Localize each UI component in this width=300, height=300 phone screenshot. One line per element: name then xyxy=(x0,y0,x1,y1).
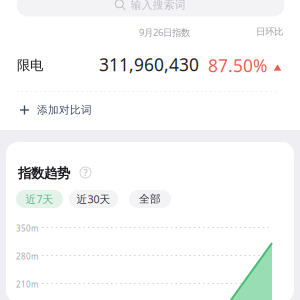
staticText: 日环比 xyxy=(256,26,283,37)
staticText: 输入搜索词 xyxy=(131,0,186,11)
button[interactable]: 添加对比词 xyxy=(20,97,150,123)
button[interactable]: 全部 xyxy=(129,190,171,208)
staticText: 311,960,430 xyxy=(99,53,199,76)
staticText: 近30天 xyxy=(76,192,110,206)
button[interactable]: 近7天 xyxy=(16,190,63,208)
staticText: 280m xyxy=(16,251,38,262)
staticText: 近7天 xyxy=(25,192,53,206)
staticText: 添加对比词 xyxy=(37,103,92,116)
staticText: 210m xyxy=(16,279,38,290)
staticText: 限电 xyxy=(17,57,43,73)
staticText: ? xyxy=(83,166,87,179)
staticText: 87.50% xyxy=(208,54,267,77)
staticText: 指数趋势 xyxy=(18,165,70,181)
button[interactable]: 输入搜索词 xyxy=(16,0,284,16)
staticText: 全部 xyxy=(139,192,161,205)
staticText: 9月26日指数 xyxy=(139,26,190,38)
staticText: 350m xyxy=(16,223,38,234)
button[interactable]: 近30天 xyxy=(69,190,118,208)
